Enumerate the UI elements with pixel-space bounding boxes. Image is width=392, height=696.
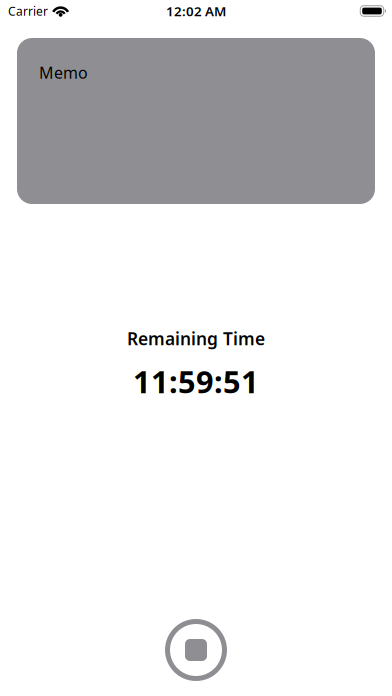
staticText: Carrier xyxy=(8,3,48,19)
staticText: Memo xyxy=(39,62,88,83)
staticText: 12:02 AM xyxy=(166,2,226,20)
button[interactable]: Memo xyxy=(17,38,375,204)
staticText: Remaining Time xyxy=(127,327,265,350)
staticText: 11:59:51 xyxy=(133,361,259,402)
button[interactable]: Stop xyxy=(165,619,227,681)
